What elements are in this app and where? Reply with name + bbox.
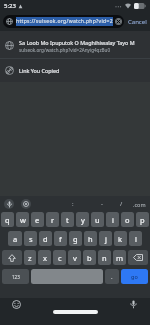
staticText: go [131, 273, 138, 280]
button[interactable]: n [98, 250, 111, 265]
staticText: u [95, 215, 100, 225]
button[interactable]: y [76, 212, 89, 227]
button[interactable]: a [8, 231, 22, 246]
staticText: j [105, 234, 107, 244]
staticText: t [66, 215, 69, 225]
button[interactable]: Link You Copied [0, 59, 150, 82]
staticText: https://sulseok.org/watch.php?vid=2 [16, 18, 113, 25]
button[interactable]: go [121, 269, 148, 284]
staticText: e [35, 215, 40, 225]
staticText: . [111, 273, 113, 281]
staticText: r [51, 215, 55, 225]
button[interactable] [129, 300, 138, 309]
button[interactable]: l [129, 231, 142, 246]
button[interactable]: j [99, 231, 112, 246]
staticText: m [116, 253, 124, 263]
button[interactable]: Sa Loob Mo Ipuputok O Maghihiwalay Tayo … [0, 33, 150, 58]
button[interactable]: t [61, 212, 74, 227]
button[interactable]: o [121, 212, 134, 227]
staticText: 123 [12, 274, 20, 280]
button[interactable]: c [53, 250, 66, 265]
staticText: i [112, 215, 114, 225]
staticText: f [59, 234, 62, 244]
staticText: k [118, 234, 123, 244]
staticText: a [13, 234, 18, 244]
button[interactable]: f [54, 231, 67, 246]
button[interactable] [12, 300, 21, 309]
button[interactable]: 123 [2, 269, 29, 284]
staticText: b [87, 253, 92, 263]
staticText: w [20, 215, 26, 225]
staticText: sulseok.org/watch.php?vid=2Anyig4qzBu0 [19, 47, 111, 53]
button[interactable]: v [68, 250, 81, 265]
button[interactable] [2, 250, 22, 265]
button[interactable]: i [106, 212, 119, 227]
button[interactable]: b [83, 250, 96, 265]
button[interactable]: - [101, 200, 103, 208]
staticText: v [73, 253, 77, 263]
button[interactable]: r [46, 212, 59, 227]
button[interactable]: : [72, 200, 74, 208]
button[interactable]: .com [133, 201, 146, 208]
staticText: 5:23 [4, 2, 16, 10]
staticText: Link You Copied [19, 67, 60, 74]
staticText: g [73, 234, 78, 244]
button[interactable]: w [16, 212, 29, 227]
staticText: Cancel [128, 18, 147, 26]
button[interactable]: p [136, 212, 149, 227]
staticText: x [43, 253, 47, 263]
staticText: h [88, 234, 93, 244]
staticText: p [140, 215, 145, 225]
button[interactable]: q [1, 212, 14, 227]
button[interactable]: s [24, 231, 37, 246]
staticText: d [43, 234, 48, 244]
button[interactable]: u [91, 212, 104, 227]
button[interactable]: g [69, 231, 82, 246]
staticText: q [5, 215, 10, 225]
button[interactable]: e [31, 212, 44, 227]
staticText: l [135, 234, 137, 244]
button[interactable]: d [39, 231, 52, 246]
button[interactable]: h [84, 231, 97, 246]
button[interactable]: x [38, 250, 51, 265]
button[interactable] [21, 199, 31, 209]
staticText: z [28, 253, 32, 263]
button[interactable] [31, 269, 103, 284]
button[interactable]: Cancel [128, 12, 147, 31]
button[interactable] [128, 250, 148, 265]
button[interactable]: k [114, 231, 127, 246]
staticText: o [125, 215, 130, 225]
staticText: n [102, 253, 107, 263]
button[interactable]: . [105, 269, 119, 284]
staticText: y [81, 215, 85, 225]
staticText: c [58, 253, 62, 263]
button[interactable]: z [24, 250, 36, 265]
button[interactable]: https://sulseok.org/watch.php?vid=2 [3, 15, 124, 28]
button[interactable]: m [113, 250, 126, 265]
staticText: s [29, 234, 33, 244]
staticText: Sa Loob Mo Ipuputok O Maghihiwalay Tayo … [19, 39, 135, 46]
button[interactable] [4, 199, 14, 209]
button[interactable]: / [120, 200, 123, 208]
